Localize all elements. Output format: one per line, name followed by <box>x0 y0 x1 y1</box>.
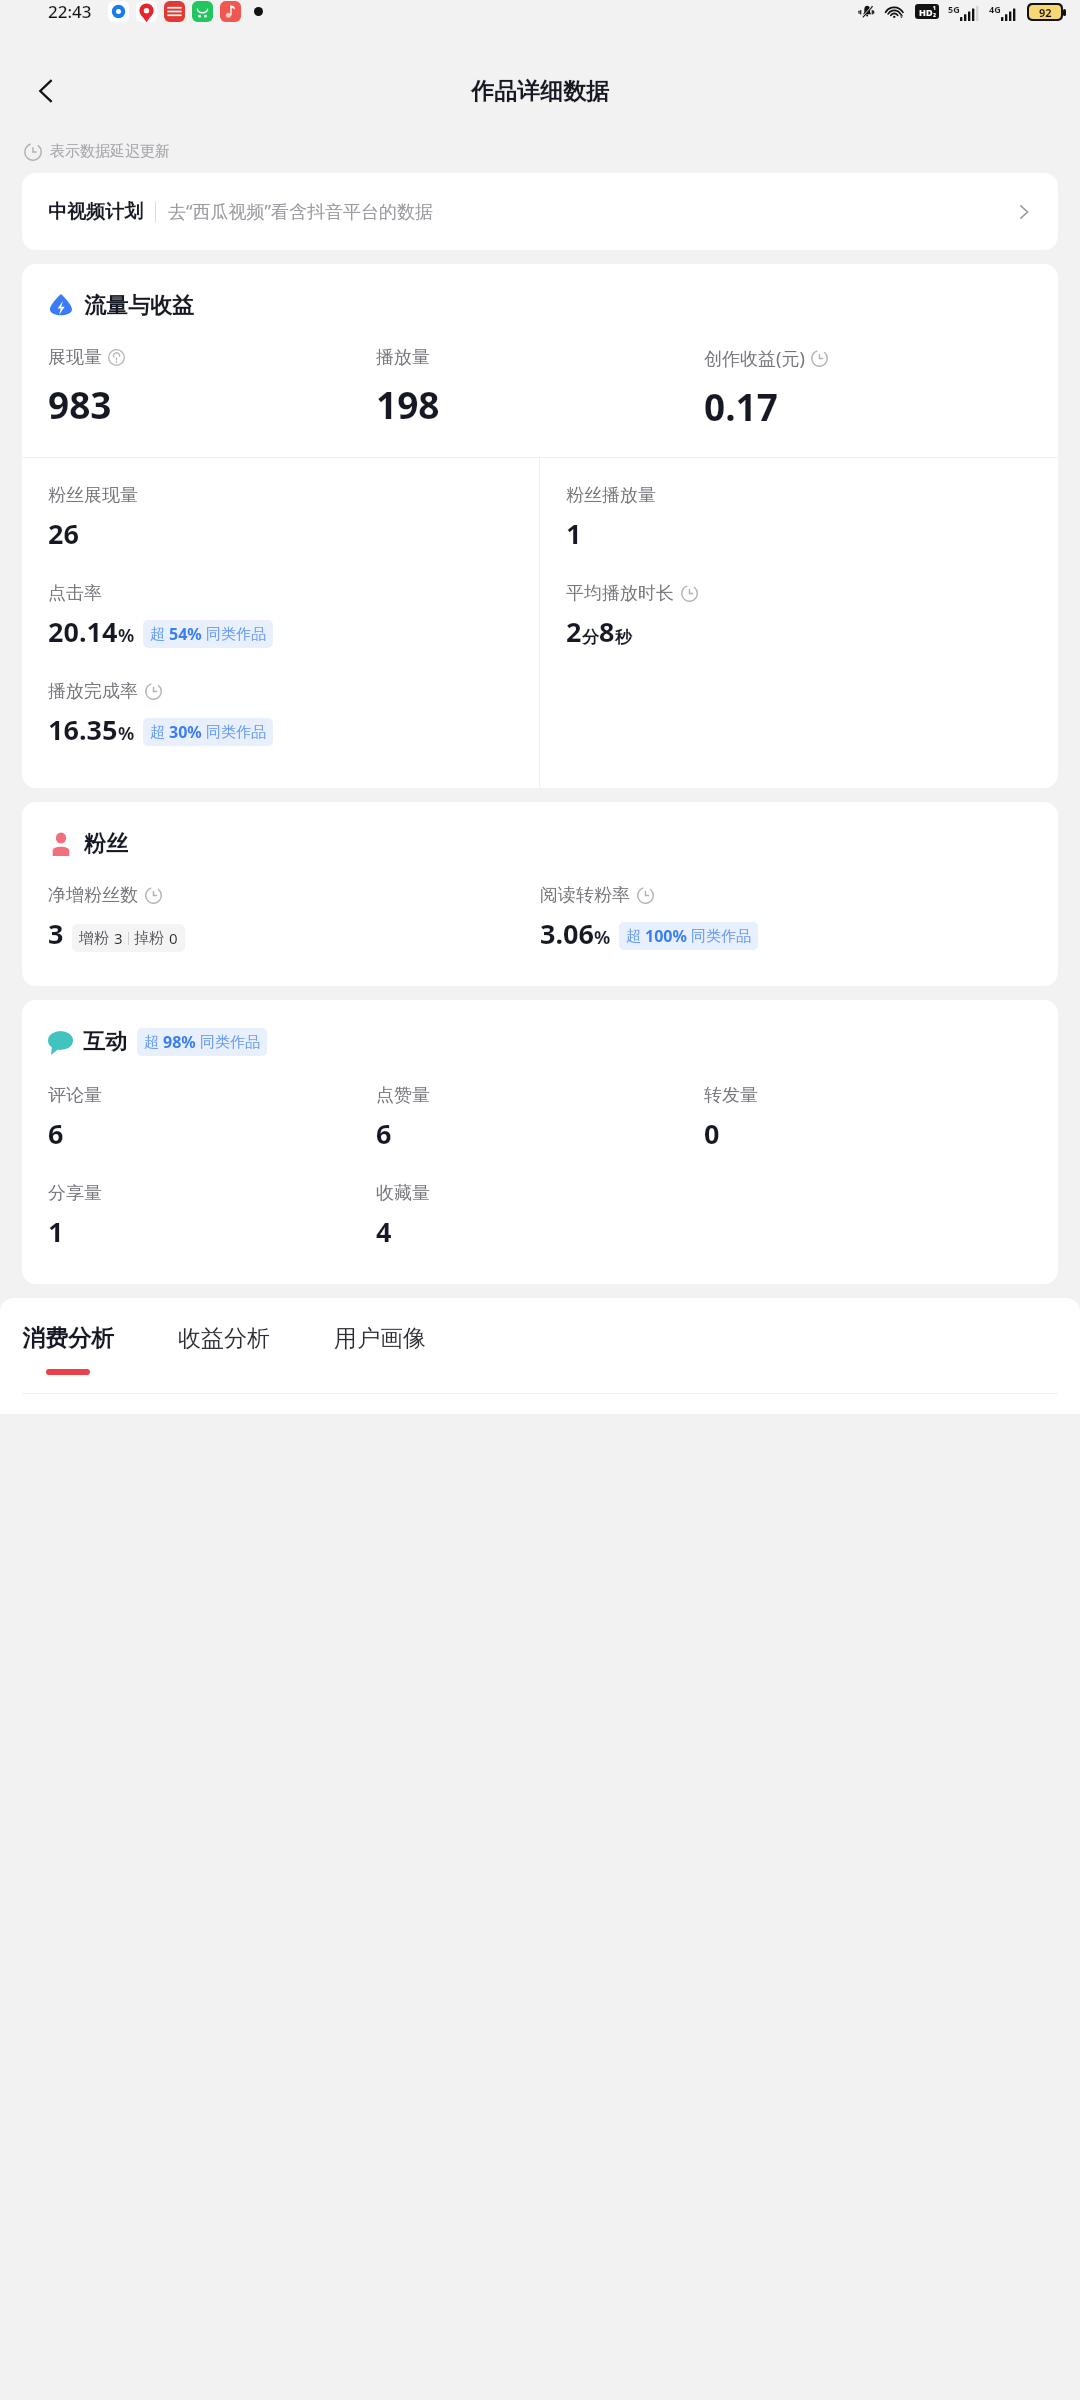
staticText: 消费分析 <box>22 1324 114 1353</box>
staticText: 6 <box>376 1115 392 1152</box>
staticText: 2 <box>566 613 582 650</box>
staticText: 净增粉丝数 <box>48 884 138 907</box>
staticText: 22:43 <box>48 0 92 23</box>
staticText: 创作收益(元) <box>704 346 805 371</box>
staticText: 评论量 <box>48 1084 102 1107</box>
staticText: 点击率 <box>48 582 102 605</box>
staticText: 100% <box>645 925 687 947</box>
staticText: 2 <box>933 12 936 19</box>
staticText: % <box>594 925 611 950</box>
button[interactable]: Back <box>18 63 74 119</box>
staticText: 中视频计划 <box>48 200 143 224</box>
staticText: 增粉 <box>79 929 109 948</box>
staticText: 同类作品 <box>206 723 266 742</box>
staticText: 0 <box>169 928 178 948</box>
button[interactable]: 用户画像 <box>334 1324 426 1375</box>
staticText: 30% <box>169 721 202 743</box>
staticText: 1 <box>933 5 936 12</box>
staticText: % <box>118 623 135 648</box>
staticText: 去“西瓜视频”看含抖音平台的数据 <box>168 199 433 224</box>
staticText: 92 <box>1039 5 1052 19</box>
staticText: 5G <box>948 3 960 15</box>
staticText: 超 <box>144 1033 159 1052</box>
staticText: 6 <box>48 1115 64 1152</box>
staticText: 分享量 <box>48 1182 102 1205</box>
staticText: 展现量 <box>48 346 102 369</box>
staticText: 粉丝播放量 <box>566 484 656 507</box>
staticText: 粉丝 <box>84 830 128 858</box>
staticText: 4 <box>376 1213 392 1250</box>
staticText: 播放量 <box>376 346 430 369</box>
staticText: 超 <box>626 927 641 946</box>
staticText: 平均播放时长 <box>566 582 674 605</box>
staticText: 3 <box>114 928 123 948</box>
staticText: 1 <box>48 1213 64 1250</box>
staticText: 点赞量 <box>376 1084 430 1107</box>
staticText: 收藏量 <box>376 1182 430 1205</box>
staticText: 阅读转粉率 <box>540 884 630 907</box>
staticText: 0.17 <box>704 381 778 431</box>
staticText: 983 <box>48 379 112 429</box>
staticText: 54% <box>169 623 202 645</box>
staticText: 超 <box>150 723 165 742</box>
staticText: 作品详细数据 <box>471 77 609 106</box>
staticText: 1 <box>566 515 582 552</box>
staticText: 20.14 <box>48 613 118 650</box>
staticText: 转发量 <box>704 1084 758 1107</box>
staticText: HD <box>919 6 933 18</box>
staticText: 3 <box>48 915 64 952</box>
staticText: 流量与收益 <box>84 292 194 320</box>
staticText: 3.06 <box>540 915 594 952</box>
staticText: 秒 <box>615 627 632 648</box>
staticText: 同类作品 <box>206 625 266 644</box>
staticText: 超 <box>150 625 165 644</box>
button[interactable]: 消费分析 <box>22 1324 114 1375</box>
staticText: 表示数据延迟更新 <box>50 142 170 161</box>
button[interactable]: 中视频计划 <box>22 173 1058 250</box>
staticText: 同类作品 <box>200 1033 260 1052</box>
staticText: 粉丝展现量 <box>48 484 138 507</box>
staticText: 26 <box>48 515 79 552</box>
staticText: 掉粉 <box>134 929 164 948</box>
staticText: 0 <box>704 1115 720 1152</box>
staticText: 同类作品 <box>691 927 751 946</box>
staticText: % <box>118 721 135 746</box>
staticText: 播放完成率 <box>48 680 138 703</box>
staticText: 用户画像 <box>334 1324 426 1353</box>
staticText: 分 <box>582 627 599 648</box>
staticText: 16.35 <box>48 711 118 748</box>
button[interactable]: 收益分析 <box>178 1324 270 1375</box>
staticText: 98% <box>163 1031 196 1053</box>
staticText: 4G <box>989 3 1001 15</box>
staticText: 互动 <box>83 1028 127 1056</box>
staticText: 收益分析 <box>178 1324 270 1353</box>
staticText: 198 <box>376 379 440 429</box>
staticText: 8 <box>599 613 615 650</box>
